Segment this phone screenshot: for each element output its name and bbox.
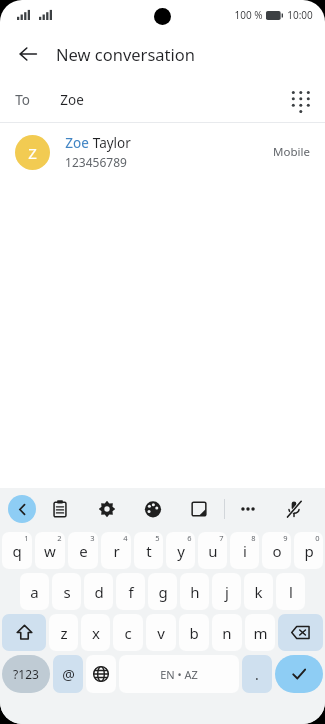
staticText: y	[177, 541, 185, 561]
staticText: 100 %	[234, 8, 263, 22]
button[interactable]: Theme	[130, 492, 176, 526]
staticText: e	[79, 541, 88, 561]
staticText: Taylor	[89, 134, 131, 152]
staticText: g	[158, 582, 168, 602]
staticText: u	[208, 541, 218, 561]
button[interactable]: Change language	[86, 655, 116, 693]
button[interactable]: b	[179, 614, 209, 651]
staticText: l	[289, 582, 293, 602]
button[interactable]: EN • AZ	[119, 655, 239, 693]
staticText: 9	[283, 533, 288, 543]
button[interactable]: i	[230, 532, 259, 569]
button[interactable]: Clipboard	[36, 492, 83, 526]
button[interactable]: Voice input off	[271, 492, 317, 526]
staticText: d	[94, 582, 104, 602]
button[interactable]: Resize keyboard	[176, 492, 222, 526]
staticText: 8	[251, 533, 256, 543]
staticText: n	[222, 623, 232, 643]
button[interactable]: Back	[8, 34, 48, 74]
button[interactable]: l	[276, 573, 305, 610]
staticText: t	[146, 541, 152, 561]
staticText: 6	[187, 533, 192, 543]
button[interactable]: s	[52, 573, 81, 610]
button[interactable]: u	[198, 532, 227, 569]
staticText: b	[189, 623, 199, 643]
staticText: k	[254, 582, 263, 602]
staticText: EN • AZ	[160, 667, 198, 682]
staticText: c	[124, 623, 132, 643]
button[interactable]: More options	[225, 492, 271, 526]
button[interactable]: q	[2, 532, 32, 569]
button[interactable]: Shift	[2, 614, 46, 651]
button[interactable]: x	[81, 614, 110, 651]
staticText: z	[60, 623, 68, 643]
staticText: 3	[90, 533, 95, 543]
button[interactable]: h	[180, 573, 209, 610]
staticText: 1	[24, 533, 29, 543]
button[interactable]: g	[148, 573, 177, 610]
button[interactable]: z	[49, 614, 78, 651]
staticText: Mobile	[273, 144, 310, 160]
staticText: f	[128, 582, 134, 602]
staticText: .	[255, 665, 259, 684]
button[interactable]: Collapse toolbar	[8, 495, 36, 523]
staticText: m	[253, 623, 268, 643]
staticText: j	[225, 582, 229, 602]
button[interactable]: Z	[0, 123, 325, 181]
staticText: q	[12, 541, 22, 561]
button[interactable]: f	[116, 573, 145, 610]
staticText: s	[63, 582, 71, 602]
staticText: 2	[57, 533, 62, 543]
staticText: o	[272, 541, 282, 561]
staticText: a	[30, 582, 39, 602]
button[interactable]: v	[146, 614, 176, 651]
button[interactable]: o	[262, 532, 291, 569]
staticText: @	[62, 665, 75, 684]
button[interactable]: w	[35, 532, 65, 569]
button[interactable]: e	[68, 532, 98, 569]
staticText: 7	[219, 533, 224, 543]
staticText: r	[113, 541, 120, 561]
button[interactable]: c	[113, 614, 143, 651]
staticText: ?123	[13, 666, 39, 682]
button[interactable]: ?123	[2, 655, 50, 693]
staticText: p	[304, 541, 314, 561]
staticText: x	[92, 623, 100, 643]
button[interactable]: Settings	[83, 492, 130, 526]
button[interactable]: @	[53, 655, 83, 693]
button[interactable]: p	[294, 532, 323, 569]
button[interactable]: y	[166, 532, 195, 569]
button[interactable]: Backspace	[278, 614, 323, 651]
staticText: New conversation	[56, 43, 195, 65]
staticText: 123456789	[65, 154, 127, 170]
staticText: h	[190, 582, 200, 602]
button[interactable]: t	[134, 532, 163, 569]
staticText: 10:00	[287, 8, 313, 22]
button[interactable]: r	[101, 532, 131, 569]
staticText: Zoe	[60, 91, 84, 109]
staticText: v	[157, 623, 165, 643]
staticText: Zoe	[65, 134, 89, 152]
staticText: 4	[123, 533, 128, 543]
staticText: To	[15, 91, 30, 109]
staticText: 5	[155, 533, 160, 543]
staticText: Z	[28, 143, 37, 163]
button[interactable]: Enter	[275, 655, 323, 693]
button[interactable]: Dialpad	[281, 81, 319, 119]
button[interactable]: d	[84, 573, 113, 610]
button[interactable]: j	[212, 573, 241, 610]
button[interactable]: .	[242, 655, 272, 693]
button[interactable]: n	[212, 614, 242, 651]
staticText: 0	[315, 533, 320, 543]
button[interactable]: k	[244, 573, 273, 610]
staticText: w	[44, 541, 56, 561]
button[interactable]: a	[20, 573, 49, 610]
staticText: i	[243, 541, 247, 561]
button[interactable]: m	[245, 614, 275, 651]
